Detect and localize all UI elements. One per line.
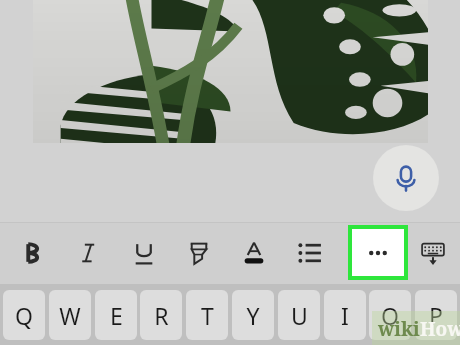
button[interactable]: P: [415, 290, 457, 340]
staticText: T: [201, 300, 214, 331]
button[interactable]: Text color: [232, 231, 276, 275]
button[interactable]: O: [369, 290, 411, 340]
button[interactable]: Y: [232, 290, 274, 340]
staticText: U: [291, 300, 308, 331]
button[interactable]: T: [186, 290, 228, 340]
button[interactable]: E: [95, 290, 137, 340]
button[interactable]: Italic: [67, 231, 111, 275]
staticText: Y: [246, 300, 260, 331]
button[interactable]: Bulleted list: [288, 231, 332, 275]
staticText: How: [420, 316, 460, 342]
button[interactable]: Highlight: [177, 231, 221, 275]
button[interactable]: I: [324, 290, 366, 340]
staticText: O: [381, 300, 399, 331]
staticText: P: [429, 300, 443, 331]
staticText: W: [59, 300, 81, 331]
button[interactable]: W: [49, 290, 91, 340]
button[interactable]: Underline: [122, 231, 166, 275]
staticText: Q: [15, 300, 33, 331]
button[interactable]: U: [278, 290, 320, 340]
button[interactable]: Voice input: [373, 145, 439, 211]
staticText: E: [110, 300, 123, 331]
button[interactable]: Bold: [12, 231, 56, 275]
staticText: R: [154, 300, 169, 331]
button[interactable]: More formatting options: [352, 229, 404, 276]
staticText: I: [341, 300, 349, 331]
staticText: wiki: [378, 316, 420, 342]
button[interactable]: Q: [3, 290, 45, 340]
button[interactable]: Hide keyboard: [411, 231, 455, 275]
button[interactable]: R: [140, 290, 182, 340]
